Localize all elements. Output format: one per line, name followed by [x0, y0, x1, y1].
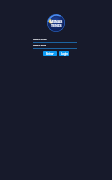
button[interactable]: Login [59, 51, 69, 56]
staticText: Digite a senha [33, 44, 47, 47]
staticText: Login [61, 52, 68, 56]
staticText: TENIS [51, 23, 62, 28]
button[interactable]: Entrar [43, 51, 57, 56]
button[interactable]: Digite o e-mail [33, 37, 77, 43]
staticText: Entrar [46, 52, 54, 56]
staticText: Digite o e-mail [33, 38, 47, 41]
staticText: MINAS [50, 19, 63, 24]
button[interactable]: Digite a senha [33, 43, 77, 49]
